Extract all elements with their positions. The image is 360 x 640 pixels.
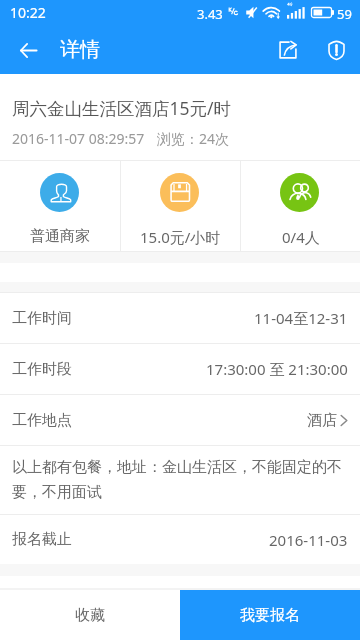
button[interactable]: 15.0元/小时: [121, 161, 240, 251]
staticText: 详情: [60, 37, 100, 62]
staticText: 酒店: [307, 411, 337, 430]
button[interactable]: 收藏: [0, 590, 180, 640]
staticText: 59: [337, 5, 352, 23]
staticText: 2016-11-03: [269, 530, 348, 550]
staticText: 报名截止: [12, 530, 72, 549]
button[interactable]: 普通商家: [0, 161, 120, 251]
staticText: 工作时间: [12, 309, 72, 328]
button[interactable]: Report: [314, 28, 358, 72]
staticText: 2016-11-07 08:29:57: [12, 129, 145, 148]
staticText: 11-04至12-31: [254, 308, 348, 328]
staticText: 我要报名: [240, 606, 300, 625]
staticText: 工作时段: [12, 360, 72, 379]
staticText: 以上都有包餐，地址：金山生活区，不能固定的不要，不用面试: [12, 458, 348, 501]
button[interactable]: 工作时间: [0, 293, 360, 343]
staticText: 3.43: [197, 5, 223, 23]
button[interactable]: Share: [266, 28, 310, 72]
staticText: 10:22: [10, 3, 46, 22]
staticText: 普通商家: [30, 227, 90, 246]
staticText: 15.0元/小时: [140, 227, 221, 247]
button[interactable]: 0/4人: [241, 161, 360, 251]
button[interactable]: 报名截止: [0, 515, 360, 564]
button[interactable]: 我要报名: [180, 590, 360, 640]
button[interactable]: 工作地点: [0, 395, 360, 445]
staticText: 工作地点: [12, 411, 72, 430]
staticText: 收藏: [75, 606, 105, 625]
staticText: 17:30:00 至 21:30:00: [206, 359, 348, 379]
staticText: 0/4人: [282, 227, 320, 247]
staticText: 周六金山生活区酒店15元/时: [12, 96, 232, 120]
button[interactable]: Back: [6, 28, 50, 72]
staticText: 浏览：24次: [157, 129, 230, 148]
button[interactable]: 工作时段: [0, 344, 360, 394]
